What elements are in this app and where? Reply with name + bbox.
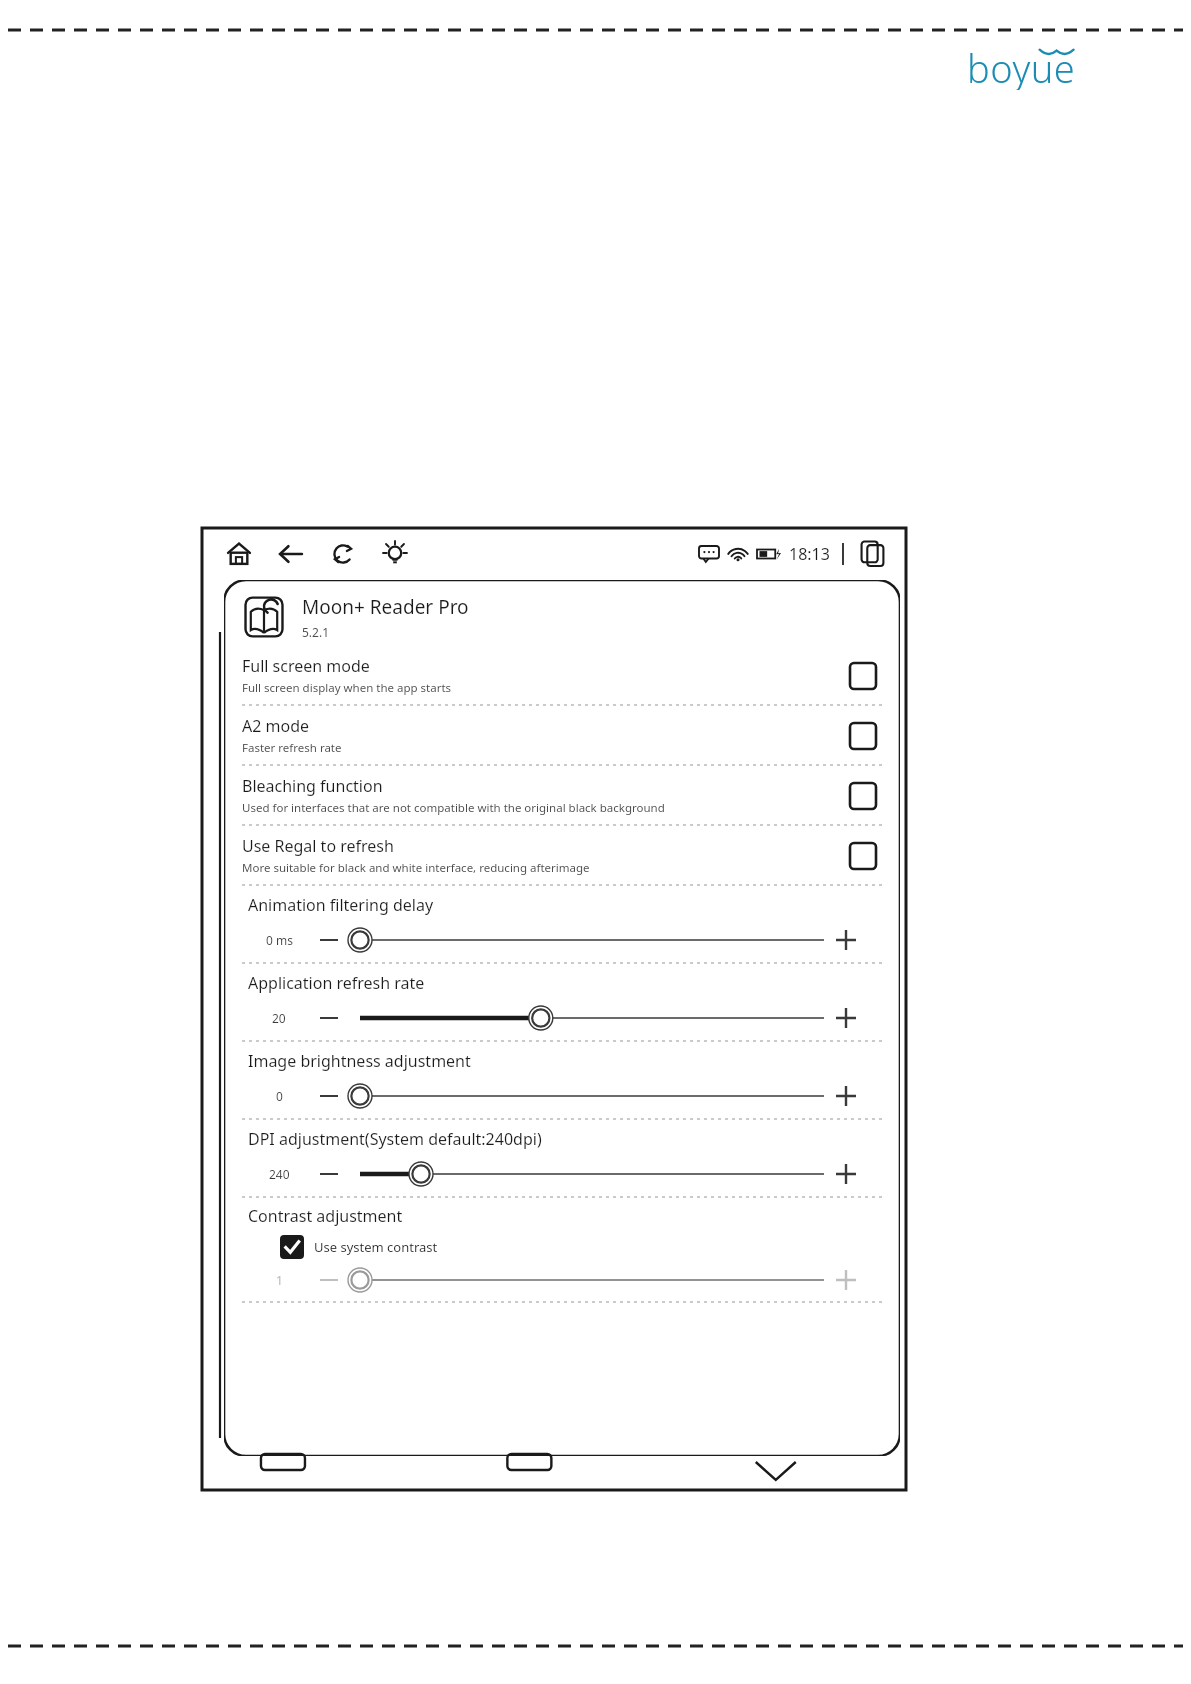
staticText: DPI adjustment(System default:240dpi) [248, 1128, 542, 1150]
staticText: Image brightness adjustment [248, 1050, 471, 1072]
button[interactable]: A2 mode [242, 706, 882, 765]
staticText: Moon+ Reader Pro [302, 594, 469, 620]
staticText: Use system contrast [314, 1238, 438, 1256]
staticText: Used for interfaces that are not compati… [242, 800, 665, 816]
button[interactable]: Decrease Application refresh rate [316, 1005, 342, 1031]
staticText: Contrast adjustment [248, 1205, 403, 1227]
button[interactable] [348, 1159, 824, 1189]
button[interactable] [348, 1003, 824, 1033]
button[interactable]: Application refresh rate [242, 964, 882, 1041]
staticText: 20 [272, 1010, 286, 1026]
button[interactable]: Back [276, 539, 306, 569]
button[interactable]: DPI adjustment(System default:240dpi) [242, 1120, 882, 1197]
button[interactable]: Bleaching function [242, 766, 882, 825]
staticText: 240 [269, 1166, 290, 1182]
staticText: Animation filtering delay [248, 894, 434, 916]
staticText: 0 [276, 1088, 283, 1104]
button[interactable] [348, 925, 824, 955]
button[interactable]: Image brightness adjustment [242, 1042, 882, 1119]
staticText: Bleaching function [242, 775, 383, 797]
button[interactable]: Increase Image brightness adjustment [832, 1082, 860, 1110]
staticText: 1 [276, 1272, 283, 1288]
staticText: Application refresh rate [248, 972, 425, 994]
button[interactable]: Use system contrast [280, 1235, 438, 1259]
button[interactable]: Increase Animation filtering delay [832, 926, 860, 954]
button[interactable]: Use Regal to refresh [242, 826, 882, 885]
button[interactable]: Decrease Animation filtering delay [316, 927, 342, 953]
button[interactable]: Recent apps [858, 539, 888, 569]
button[interactable]: Home [224, 539, 254, 569]
button[interactable]: Decrease DPI adjustment(System default:2… [316, 1161, 342, 1187]
button[interactable]: Animation filtering delay [242, 886, 882, 963]
button[interactable] [348, 1081, 824, 1111]
staticText: Use Regal to refresh [242, 835, 394, 857]
staticText: 0 ms [266, 932, 293, 948]
button[interactable]: Increase DPI adjustment(System default:2… [832, 1160, 860, 1188]
button[interactable]: Full screen mode [242, 646, 882, 705]
staticText: boyue [967, 42, 1076, 90]
staticText: 18:13 [789, 543, 830, 565]
staticText: Full screen display when the app starts [242, 680, 452, 696]
button[interactable]: Front light [380, 539, 410, 569]
staticText: 5.2.1 [302, 624, 330, 640]
button[interactable]: Refresh [328, 539, 358, 569]
staticText: More suitable for black and white interf… [242, 860, 590, 876]
button[interactable]: Increase Application refresh rate [832, 1004, 860, 1032]
button[interactable]: Decrease Image brightness adjustment [316, 1083, 342, 1109]
staticText: A2 mode [242, 715, 310, 737]
staticText: Full screen mode [242, 655, 370, 677]
staticText: Faster refresh rate [242, 740, 342, 756]
